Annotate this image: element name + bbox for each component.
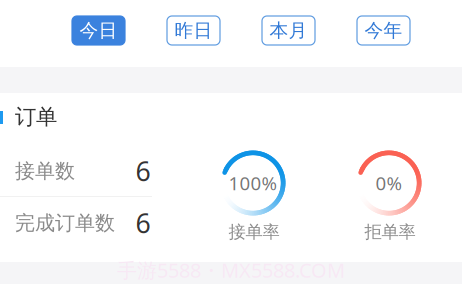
- button[interactable]: 完成订单数: [0, 0, 462, 291]
- staticText: 接单数: [15, 159, 75, 183]
- staticText: 0%: [375, 171, 402, 195]
- staticText: 拒单率: [364, 221, 415, 243]
- staticText: 6: [135, 205, 150, 241]
- staticText: 接单率: [228, 221, 279, 243]
- staticText: 6: [135, 153, 150, 189]
- staticText: 完成订单数: [15, 211, 115, 235]
- staticText: 100%: [228, 171, 277, 195]
- button[interactable]: 接单数: [0, 0, 462, 291]
- button[interactable]: 今年: [357, 16, 410, 45]
- button[interactable]: 0%: [0, 0, 462, 291]
- button[interactable]: 100%: [0, 0, 462, 291]
- staticText: 手游5588・MX5588.COM: [117, 257, 345, 283]
- button[interactable]: 今日: [72, 16, 125, 45]
- button[interactable]: 本月: [262, 16, 315, 45]
- staticText: 今日: [79, 19, 117, 42]
- staticText: 本月: [269, 19, 307, 42]
- staticText: 今年: [364, 19, 402, 42]
- button[interactable]: 昨日: [167, 16, 220, 45]
- staticText: 昨日: [174, 19, 212, 42]
- staticText: 订单: [15, 104, 57, 130]
